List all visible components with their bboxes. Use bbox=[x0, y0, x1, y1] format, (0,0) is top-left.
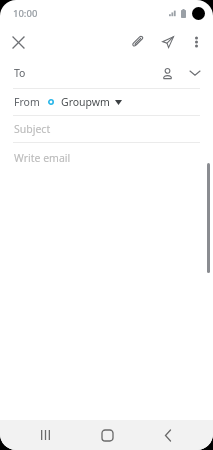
staticText: 10:00 bbox=[13, 7, 38, 20]
staticText: From bbox=[14, 95, 40, 109]
staticText: Subject bbox=[14, 122, 51, 136]
button[interactable]: Write email bbox=[0, 143, 213, 420]
staticText: Groupwm bbox=[61, 95, 110, 109]
button[interactable]: Expand recipients bbox=[183, 61, 207, 85]
staticText: To bbox=[14, 66, 26, 80]
button[interactable]: Recent apps bbox=[28, 420, 62, 450]
button[interactable]: Subject bbox=[0, 116, 213, 142]
button[interactable]: From bbox=[0, 89, 213, 115]
button[interactable]: Attach bbox=[125, 29, 151, 55]
button[interactable]: Send bbox=[155, 29, 181, 55]
button[interactable]: Home bbox=[90, 420, 124, 450]
staticText: Write email bbox=[14, 151, 71, 165]
button[interactable]: More options bbox=[183, 29, 209, 55]
button[interactable]: Contacts bbox=[155, 61, 179, 85]
button[interactable]: Back bbox=[151, 420, 185, 450]
button[interactable]: Close bbox=[5, 29, 31, 55]
